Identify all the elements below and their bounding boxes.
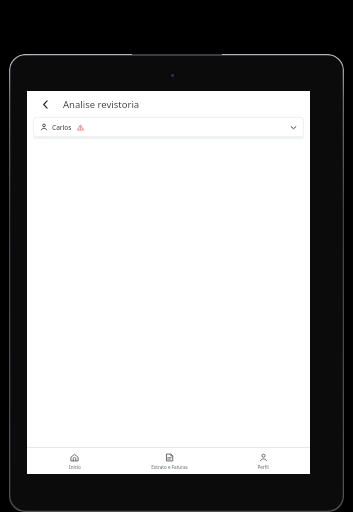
button[interactable]: Perfil — [216, 448, 310, 474]
button[interactable]: Voltar — [35, 94, 55, 114]
staticText: Carlos — [52, 123, 72, 132]
button[interactable]: Carlos — [33, 117, 304, 137]
button[interactable]: Início — [27, 448, 122, 474]
button[interactable]: Extrato e Faturas — [122, 448, 216, 474]
staticText: Analise revistoria — [63, 98, 140, 111]
staticText: Perfil — [257, 464, 269, 470]
staticText: Início — [69, 464, 81, 470]
staticText: Extrato e Faturas — [151, 464, 188, 470]
